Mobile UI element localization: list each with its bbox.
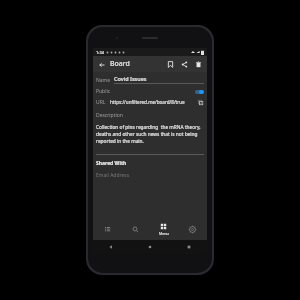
staticText: 1:34 [96, 50, 104, 55]
button[interactable]: Copy link [196, 98, 204, 106]
button[interactable]: Settings [178, 218, 207, 240]
staticText: Name [96, 77, 111, 84]
staticText: Public [96, 88, 111, 95]
button[interactable]: Delete [192, 58, 204, 70]
button[interactable]: Bookmark [164, 58, 176, 70]
staticText: Covid Issues [114, 75, 147, 82]
staticText: https://unfiltered.me/board/8/true [110, 99, 196, 105]
button[interactable]: Share [178, 58, 190, 70]
staticText: Shared With [96, 160, 127, 167]
button[interactable]: Home [146, 243, 154, 251]
button[interactable]: Search [121, 218, 149, 240]
button[interactable]: Menu [149, 218, 178, 240]
staticText: URL [96, 99, 106, 106]
staticText: Description [96, 112, 123, 119]
staticText: Board [110, 59, 130, 69]
button[interactable]: Recents [185, 243, 193, 251]
button[interactable]: Back [107, 243, 115, 251]
staticText: Menu [159, 231, 169, 236]
staticText: Collection of pins regarding the mRNA th… [96, 124, 204, 145]
button[interactable]: List [93, 218, 121, 240]
button[interactable]: Navigate up [96, 59, 107, 70]
staticText: Email Address [96, 172, 130, 179]
button[interactable]: Public [96, 88, 204, 95]
